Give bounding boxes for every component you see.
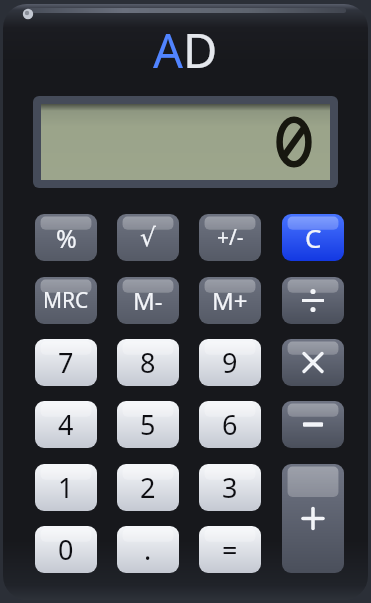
button[interactable]: MRC xyxy=(35,277,97,324)
staticText: +/- xyxy=(217,223,244,252)
button[interactable]: Square root xyxy=(117,214,179,261)
button[interactable]: Equals xyxy=(199,526,261,573)
staticText: = xyxy=(222,531,238,568)
staticText: % xyxy=(56,221,77,255)
staticText: 8 xyxy=(140,344,156,381)
button[interactable]: M- xyxy=(117,277,179,324)
staticText: 4 xyxy=(58,406,74,443)
button[interactable]: Plus xyxy=(282,464,344,573)
staticText: 9 xyxy=(222,344,238,381)
staticText: AD xyxy=(153,18,218,82)
staticText: M+ xyxy=(212,284,248,317)
button[interactable]: % xyxy=(35,214,97,261)
button[interactable]: 8 xyxy=(117,339,179,386)
button[interactable]: 5 xyxy=(117,401,179,448)
button[interactable]: Plus minus xyxy=(199,214,261,261)
staticText: 2 xyxy=(140,469,156,506)
button[interactable]: Minus xyxy=(282,401,344,448)
staticText: 6 xyxy=(222,406,238,443)
button[interactable]: Multiply xyxy=(282,339,344,386)
staticText: 7 xyxy=(58,344,74,381)
button[interactable]: M+ xyxy=(199,277,261,324)
button[interactable]: 3 xyxy=(199,464,261,511)
staticText: MRC xyxy=(43,286,89,315)
staticText: 3 xyxy=(222,469,238,506)
staticText: √ xyxy=(140,223,156,252)
button[interactable]: Decimal point xyxy=(117,526,179,573)
staticText: 1 xyxy=(58,469,74,506)
button[interactable]: 2 xyxy=(117,464,179,511)
staticText: 5 xyxy=(140,406,156,443)
staticText: 0 xyxy=(58,531,74,568)
button[interactable]: 6 xyxy=(199,401,261,448)
button[interactable]: 4 xyxy=(35,401,97,448)
button[interactable]: 1 xyxy=(35,464,97,511)
button[interactable]: Clear xyxy=(282,214,344,261)
button[interactable]: Divide xyxy=(282,277,344,324)
staticText: C xyxy=(305,220,322,255)
button[interactable]: 0 xyxy=(35,526,97,573)
button[interactable]: 9 xyxy=(199,339,261,386)
staticText: . xyxy=(144,531,152,568)
staticText: M- xyxy=(133,284,163,317)
button[interactable]: 7 xyxy=(35,339,97,386)
